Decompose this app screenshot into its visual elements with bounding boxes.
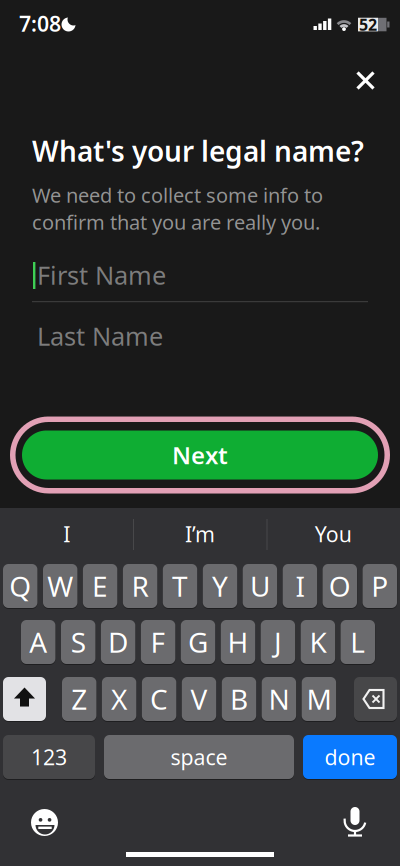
- staticText: W: [47, 567, 73, 605]
- button[interactable]: F: [141, 620, 175, 664]
- staticText: K: [309, 623, 326, 661]
- staticText: done: [324, 743, 375, 771]
- button[interactable]: X: [102, 677, 136, 721]
- button[interactable]: K: [301, 620, 335, 664]
- button[interactable]: M: [302, 677, 336, 721]
- staticText: I’m: [185, 520, 215, 548]
- button[interactable]: I’m: [137, 514, 262, 554]
- staticText: Last Name: [37, 319, 163, 353]
- button[interactable]: Last Name: [37, 316, 368, 356]
- button[interactable]: T: [163, 564, 197, 608]
- staticText: C: [150, 680, 168, 718]
- staticText: What's your legal name?: [32, 132, 364, 170]
- staticText: J: [274, 623, 282, 661]
- button[interactable]: P: [363, 564, 397, 608]
- button[interactable]: Y: [203, 564, 237, 608]
- staticText: Z: [71, 680, 87, 718]
- button[interactable]: You: [271, 514, 396, 554]
- button[interactable]: A: [21, 620, 55, 664]
- staticText: B: [230, 680, 248, 718]
- button[interactable]: Q: [3, 564, 37, 608]
- staticText: 7:08: [19, 9, 61, 38]
- button[interactable]: Shift: [3, 677, 46, 721]
- button[interactable]: Close: [343, 58, 387, 102]
- button[interactable]: B: [222, 677, 256, 721]
- button[interactable]: J: [261, 620, 295, 664]
- staticText: G: [188, 623, 208, 661]
- button[interactable]: H: [221, 620, 255, 664]
- button[interactable]: O: [323, 564, 357, 608]
- staticText: L: [350, 623, 365, 661]
- button[interactable]: V: [182, 677, 216, 721]
- staticText: Y: [212, 567, 228, 605]
- staticText: Q: [9, 567, 31, 605]
- button[interactable]: E: [83, 564, 117, 608]
- button[interactable]: I: [283, 564, 317, 608]
- staticText: A: [29, 623, 47, 661]
- staticText: X: [111, 680, 127, 718]
- button[interactable]: Delete: [354, 677, 397, 721]
- button[interactable]: R: [123, 564, 157, 608]
- staticText: You: [315, 520, 352, 548]
- staticText: confirm that you are really you.: [32, 209, 320, 235]
- button[interactable]: Z: [62, 677, 96, 721]
- staticText: S: [71, 623, 86, 661]
- button[interactable]: U: [243, 564, 277, 608]
- staticText: I: [295, 567, 304, 605]
- staticText: H: [227, 623, 248, 661]
- button[interactable]: D: [101, 620, 135, 664]
- staticText: E: [92, 567, 108, 605]
- button[interactable]: First Name: [37, 255, 368, 295]
- staticText: F: [151, 623, 166, 661]
- button[interactable]: W: [43, 564, 77, 608]
- staticText: P: [371, 567, 388, 605]
- staticText: M: [306, 680, 331, 718]
- button[interactable]: space: [104, 735, 294, 779]
- button[interactable]: I: [4, 514, 129, 554]
- staticText: O: [329, 567, 351, 605]
- staticText: Next: [172, 439, 228, 471]
- button[interactable]: 123: [3, 735, 95, 779]
- button[interactable]: Dictate: [326, 794, 382, 850]
- staticText: First Name: [37, 258, 166, 292]
- staticText: R: [132, 567, 149, 605]
- button[interactable]: Emoji: [16, 794, 72, 850]
- button[interactable]: done: [303, 735, 397, 779]
- button[interactable]: L: [341, 620, 375, 664]
- staticText: We need to collect some info to: [32, 182, 323, 208]
- button[interactable]: N: [262, 677, 296, 721]
- staticText: 52: [359, 14, 377, 35]
- staticText: space: [170, 743, 227, 771]
- staticText: I: [63, 520, 70, 548]
- staticText: V: [190, 680, 207, 718]
- button[interactable]: S: [61, 620, 95, 664]
- staticText: D: [108, 623, 128, 661]
- button[interactable]: Next: [10, 416, 390, 493]
- button[interactable]: C: [142, 677, 176, 721]
- staticText: 123: [31, 743, 67, 771]
- button[interactable]: G: [181, 620, 215, 664]
- staticText: T: [172, 567, 188, 605]
- staticText: U: [250, 567, 270, 605]
- staticText: N: [268, 680, 289, 718]
